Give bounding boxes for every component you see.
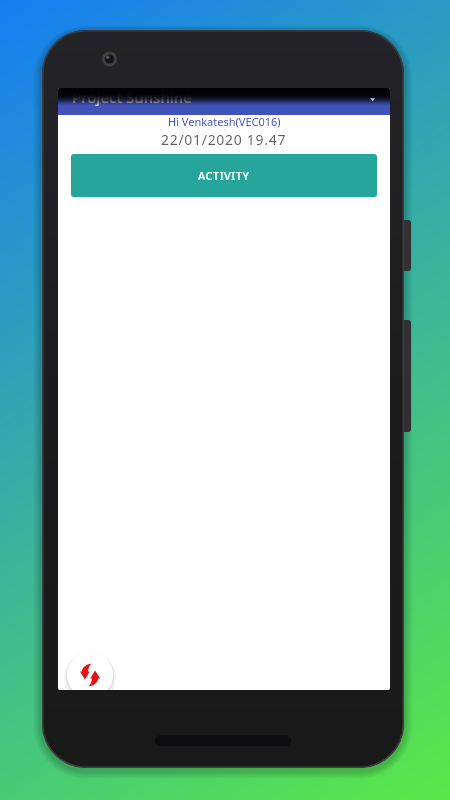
staticText: Project Sunshine: [72, 88, 192, 107]
button[interactable]: ACTIVITY: [71, 154, 377, 197]
staticText: Hi Venkatesh(VEC016): [168, 114, 281, 129]
button[interactable]: [67, 652, 113, 690]
staticText: ACTIVITY: [198, 168, 250, 183]
staticText: 22/01/2020 19.47: [161, 130, 287, 149]
